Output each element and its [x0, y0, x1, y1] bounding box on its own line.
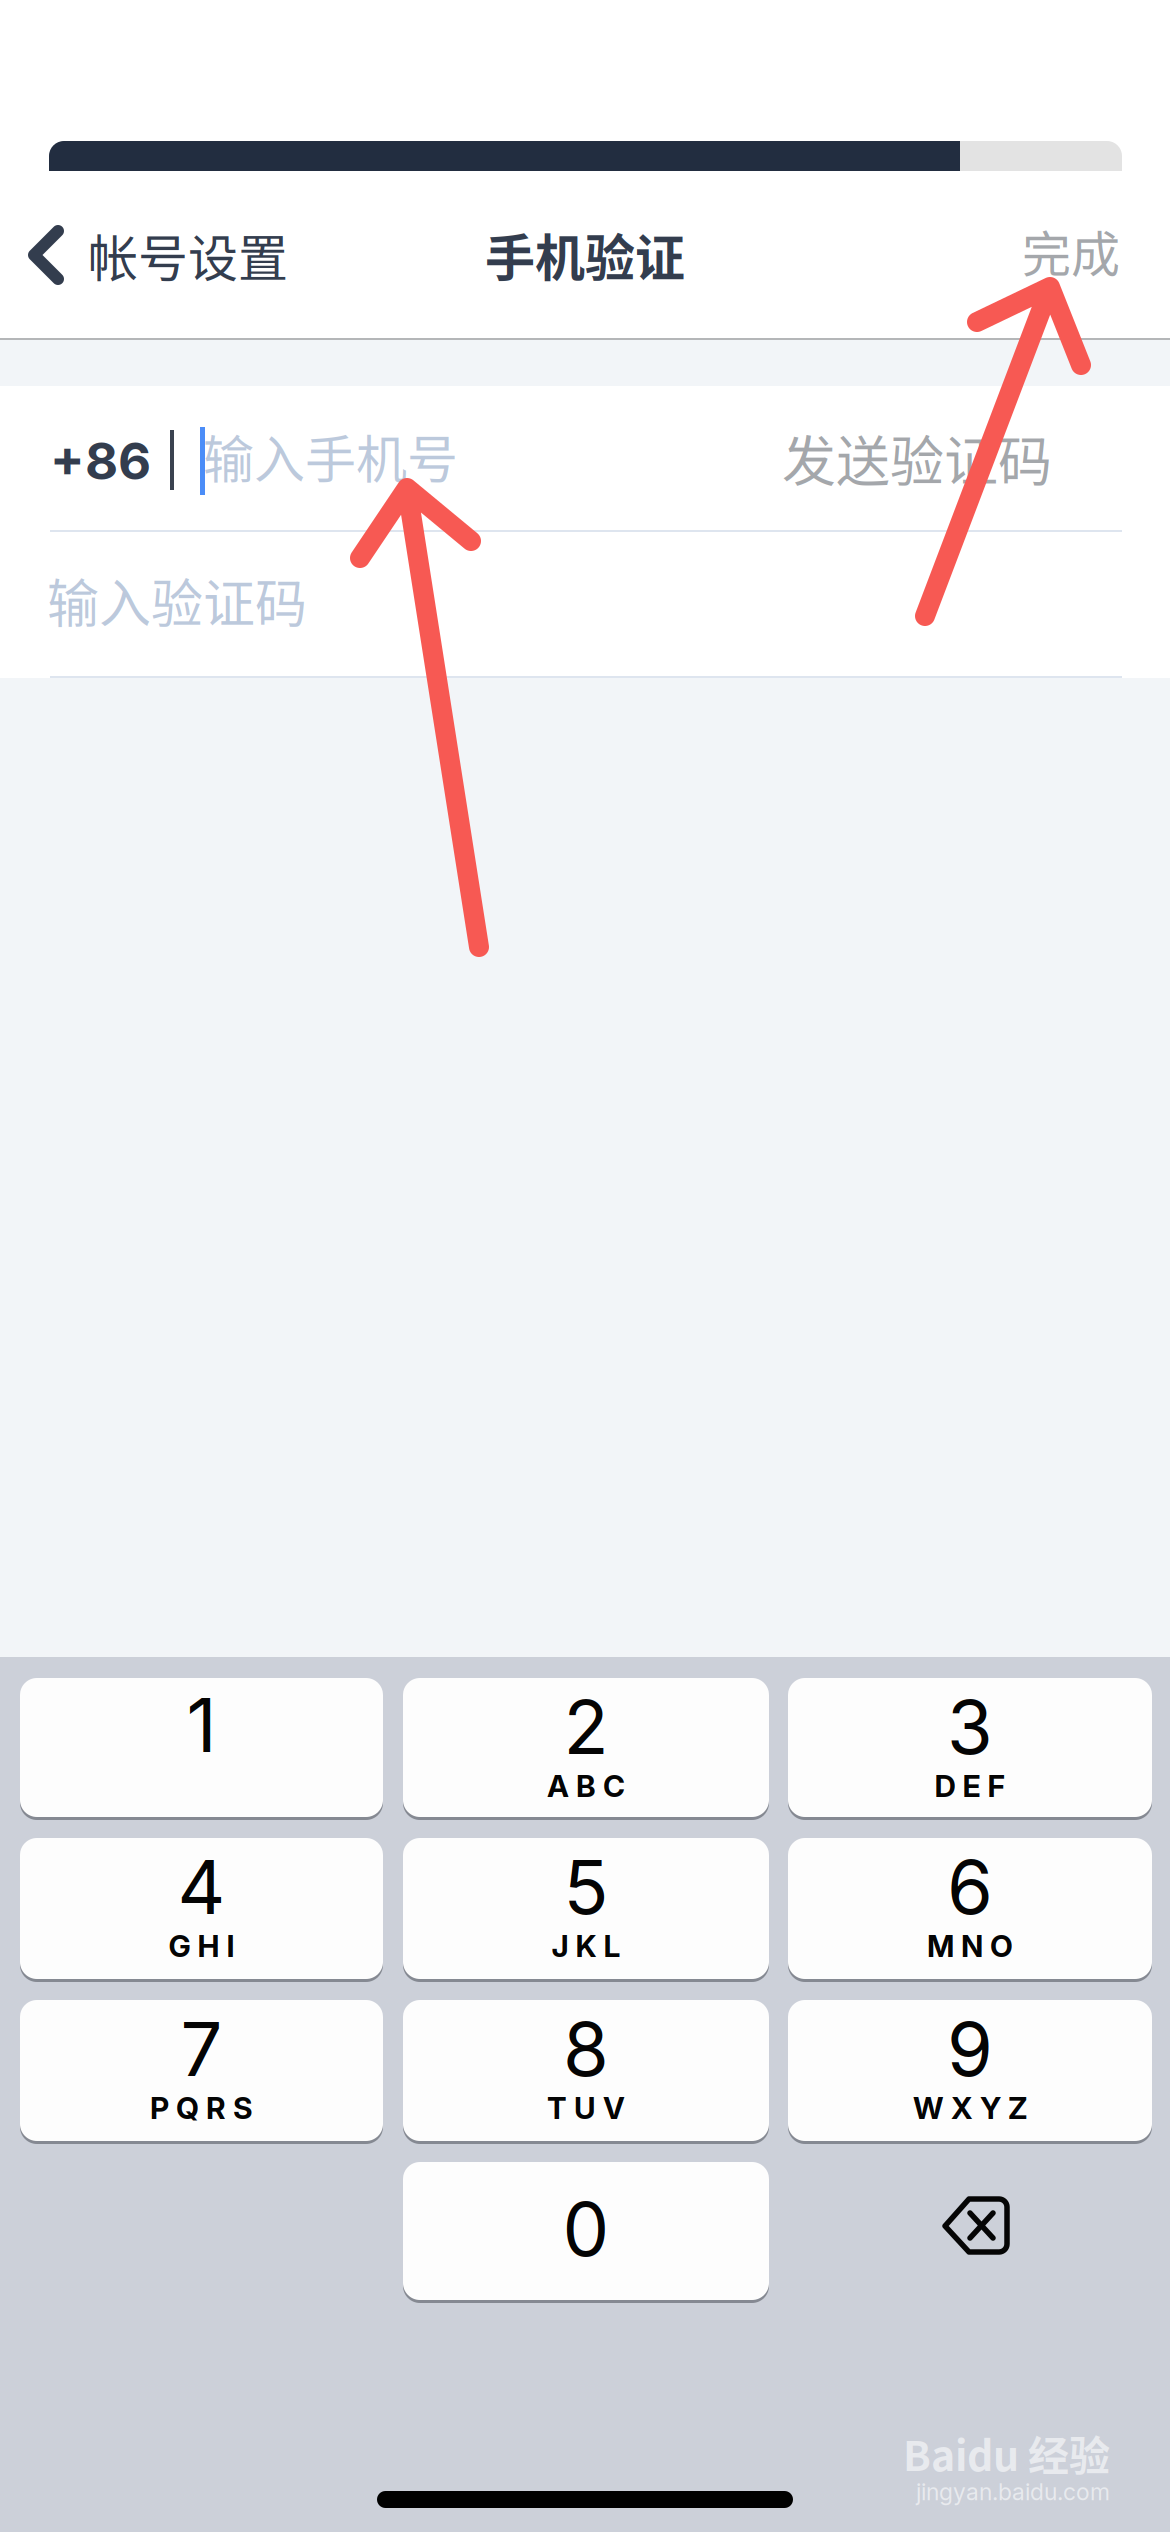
- button[interactable]: 完成: [860, 171, 1170, 338]
- staticText: 输入手机号: [203, 419, 458, 493]
- button[interactable]: 5: [403, 1838, 769, 1979]
- staticText: M N O: [927, 1928, 1013, 1964]
- staticText: W X Y Z: [913, 2090, 1027, 2126]
- staticText: 2: [563, 1682, 608, 1772]
- staticText: P Q R S: [150, 2090, 253, 2126]
- staticText: 输入验证码: [47, 562, 307, 638]
- staticText: 1: [186, 1680, 216, 1770]
- staticText: J K L: [551, 1928, 620, 1964]
- staticText: 6: [947, 1842, 993, 1932]
- staticText: 7: [180, 2004, 222, 2094]
- staticText: 帐号设置: [88, 219, 288, 291]
- staticText: 发送验证码: [782, 419, 1052, 497]
- staticText: T U V: [547, 2090, 625, 2126]
- staticText: 5: [563, 1842, 608, 1932]
- button[interactable]: 帐号设置: [0, 171, 470, 338]
- staticText: A B C: [547, 1768, 625, 1804]
- staticText: jingyan.baidu.com: [916, 2478, 1110, 2506]
- button[interactable]: 9: [788, 2000, 1152, 2141]
- button[interactable]: Delete: [880, 2158, 1080, 2294]
- staticText: 8: [563, 2004, 609, 2094]
- staticText: Baidu 经验: [903, 2423, 1110, 2483]
- staticText: 9: [947, 2004, 993, 2094]
- button[interactable]: 4: [20, 1838, 383, 1979]
- button[interactable]: 3: [788, 1678, 1152, 1817]
- staticText: G H I: [168, 1928, 234, 1964]
- staticText: 手机验证: [485, 218, 685, 291]
- staticText: 4: [177, 1842, 225, 1932]
- button[interactable]: 6: [788, 1838, 1152, 1979]
- button[interactable]: 7: [20, 2000, 383, 2141]
- button[interactable]: 2: [403, 1678, 769, 1817]
- staticText: D E F: [934, 1768, 1005, 1804]
- staticText: 完成: [1022, 215, 1120, 286]
- staticText: +86: [50, 430, 151, 492]
- button[interactable]: 1: [20, 1678, 383, 1817]
- staticText: 0: [562, 2184, 609, 2274]
- button[interactable]: 发送验证码: [735, 386, 1120, 531]
- button[interactable]: 8: [403, 2000, 769, 2141]
- button[interactable]: 0: [403, 2162, 769, 2300]
- staticText: 3: [947, 1682, 993, 1772]
